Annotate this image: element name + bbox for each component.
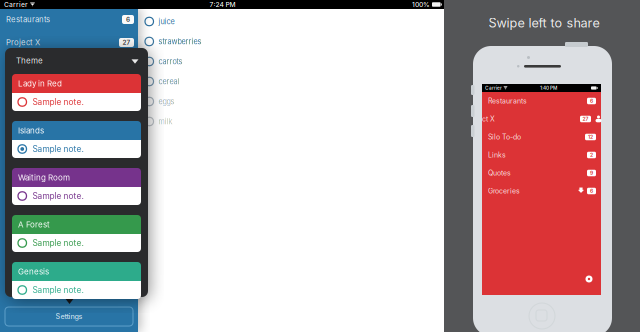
staticText: Groceries [488,187,520,195]
staticText: 27 [582,116,588,122]
staticText: Genesis [18,267,49,276]
staticText: Islands [18,126,44,135]
staticText: Carrier [4,0,28,9]
button[interactable]: juice [145,11,295,31]
staticText: A Forest [18,220,50,229]
staticText: 6 [126,16,130,23]
button[interactable]: carrots [145,51,295,71]
button[interactable]: ct X [482,110,601,128]
staticText: 7:24 PM [209,0,235,9]
button[interactable]: milk [145,111,295,131]
staticText: ct X [482,115,495,123]
staticText: 12 [588,134,593,140]
staticText: 9 [590,170,593,176]
staticText: Restaurants [488,97,527,105]
staticText: Sample note. [32,97,83,107]
button[interactable]: Quotes [482,164,601,182]
button[interactable]: Genesis [12,262,141,299]
staticText: eggs [158,97,174,106]
button[interactable]: eggs [145,91,295,111]
staticText: Carrier [485,85,502,91]
button[interactable]: Restaurants [482,92,601,110]
staticText: carrots [158,57,182,66]
staticText: Restaurants [6,15,50,24]
button[interactable]: Settings [5,307,133,326]
staticText: 100% [412,0,430,9]
staticText: Theme [16,56,43,65]
staticText: juice [158,17,174,26]
button[interactable]: Restaurants [0,8,138,31]
button[interactable]: Project X [0,31,138,54]
button[interactable]: Islands [12,121,141,158]
button[interactable]: Waiting Room [12,168,141,205]
button[interactable]: strawberries [145,31,295,51]
staticText: Settings [55,312,82,321]
staticText: milk [158,117,172,126]
staticText: Sample note. [32,238,83,248]
button[interactable]: Links [482,146,601,164]
staticText: Silo To-do [488,133,521,141]
button[interactable]: A Forest [12,215,141,252]
button[interactable]: Settings [585,275,593,283]
button[interactable]: Lady in Red [12,74,141,111]
staticText: Sample note. [32,144,83,154]
staticText: Lady in Red [18,79,62,88]
staticText: Links [488,151,506,159]
staticText: cereal [158,77,179,86]
staticText: 6 [590,188,593,194]
button[interactable]: Silo To-do [482,128,601,146]
staticText: Quotes [488,169,511,177]
staticText: 27 [122,39,130,46]
button[interactable]: cereal [145,71,295,91]
staticText: 1:40 PM [540,85,557,91]
staticText: Swipe left to share [488,15,599,31]
staticText: Project X [6,38,40,47]
button[interactable]: Choose theme [131,59,138,64]
button[interactable]: Groceries [482,182,601,200]
staticText: Sample note. [32,285,83,295]
staticText: Waiting Room [18,173,70,182]
staticText: Sample note. [32,191,83,201]
staticText: 6 [590,98,593,104]
staticText: strawberries [158,37,201,46]
staticText: 2 [590,152,593,158]
